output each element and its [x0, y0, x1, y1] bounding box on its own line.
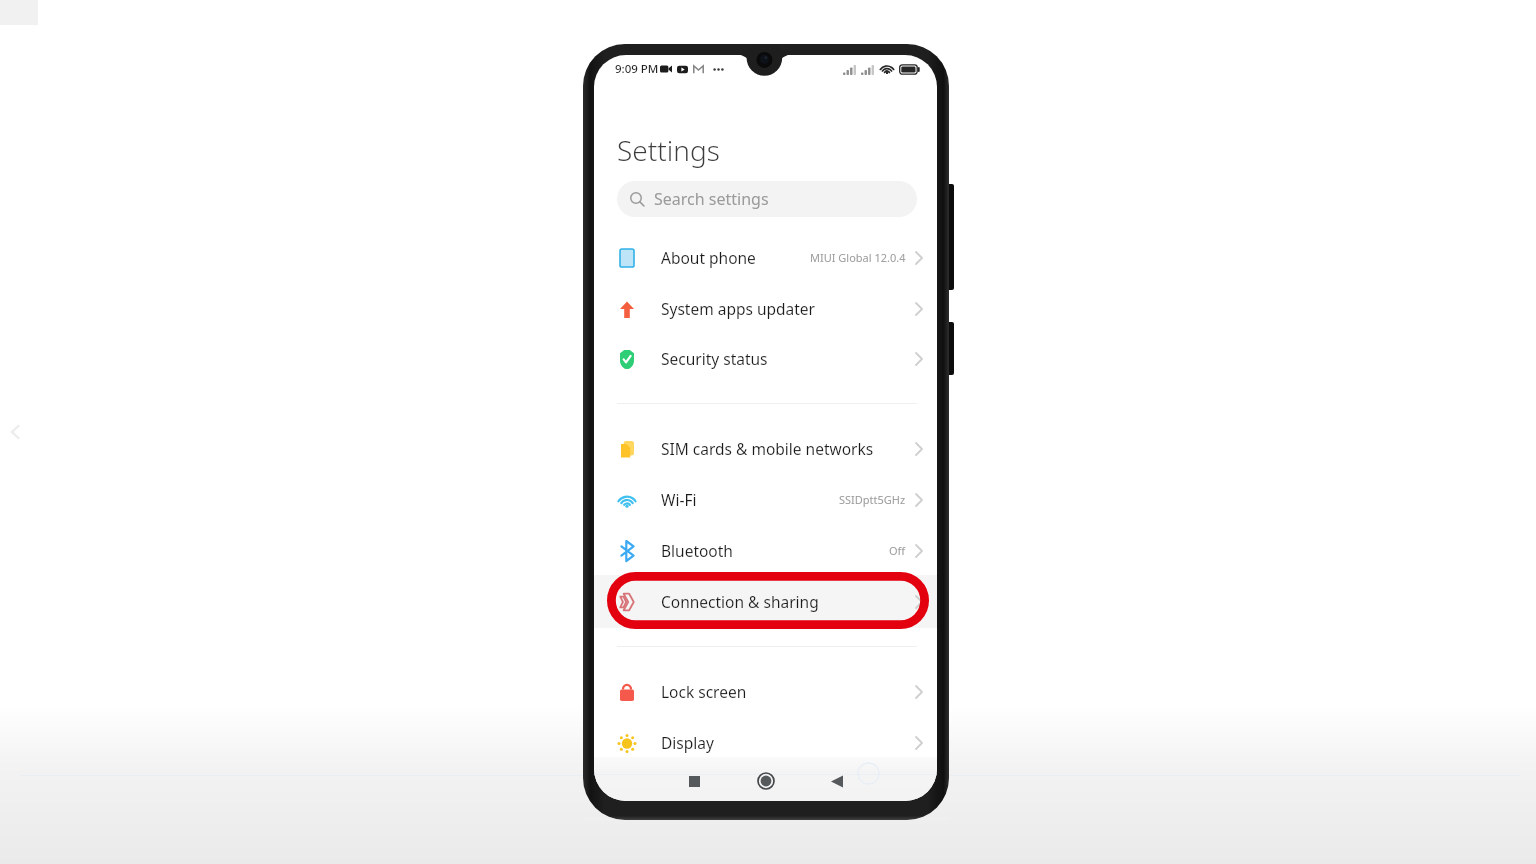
button[interactable]: Back	[817, 761, 857, 801]
button[interactable]: Recents	[674, 761, 714, 801]
staticText: Lock screen	[661, 681, 747, 702]
button[interactable]: Display	[594, 716, 937, 769]
button[interactable]: Lock screen	[594, 665, 937, 718]
staticText: Bluetooth	[661, 540, 733, 561]
staticText: Settings	[617, 131, 720, 169]
button[interactable]: Connection & sharing	[594, 575, 937, 628]
button[interactable]: About phone	[594, 231, 937, 284]
button[interactable]: Bluetooth	[594, 524, 937, 577]
button[interactable]: Home	[746, 761, 786, 801]
staticText: Search settings	[654, 188, 769, 210]
button[interactable]: System apps updater	[594, 282, 937, 335]
staticText: Security status	[661, 348, 768, 369]
staticText: SIM cards & mobile networks	[661, 438, 874, 459]
staticText: Display	[661, 732, 714, 753]
staticText: Connection & sharing	[661, 591, 819, 612]
button[interactable]: Security status	[594, 332, 937, 385]
staticText: 9:09 PM	[615, 61, 659, 77]
staticText: Wi-Fi	[661, 489, 697, 510]
button[interactable]: Search settings	[617, 181, 917, 217]
staticText: SSIDptt5GHz	[839, 492, 906, 507]
staticText: MIUI Global 12.0.4	[810, 250, 906, 265]
staticText: About phone	[661, 247, 756, 268]
staticText: System apps updater	[661, 298, 815, 319]
staticText: Off	[889, 543, 906, 558]
button[interactable]: SIM cards & mobile networks	[594, 422, 937, 475]
button[interactable]: Wi-Fi	[594, 473, 937, 526]
